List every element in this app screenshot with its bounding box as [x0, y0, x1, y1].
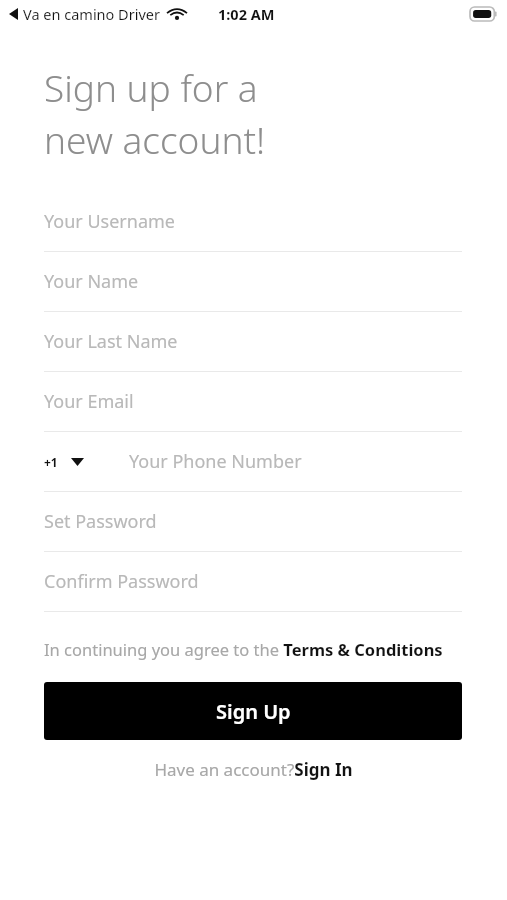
staticText: +1	[44, 454, 58, 470]
staticText: Sign up for a new account!	[44, 62, 266, 165]
other: Select country code	[68, 453, 86, 471]
staticText: Your Email	[44, 389, 134, 414]
staticText: Your Phone Number	[129, 449, 302, 474]
staticText: Confirm Password	[44, 569, 199, 594]
staticText: Your Last Name	[44, 329, 178, 354]
staticText: Your Username	[44, 209, 175, 234]
button[interactable]: Confirm Password	[44, 552, 462, 612]
button[interactable]: Your Username	[44, 192, 462, 252]
staticText: In continuing you agree to the Terms & C…	[44, 638, 443, 660]
button[interactable]: Have an account?Sign In	[44, 758, 462, 781]
staticText: Your Name	[44, 269, 139, 294]
button[interactable]: Set Password	[44, 492, 462, 552]
staticText: Have an account?Sign In	[154, 758, 353, 781]
button[interactable]: Your Name	[44, 252, 462, 312]
button[interactable]: +1	[44, 432, 462, 492]
staticText: Va en camino Driver	[23, 4, 160, 24]
staticText: Sign Up	[216, 698, 291, 725]
button[interactable]: Sign Up	[44, 682, 462, 740]
staticText: 1:02 AM	[218, 4, 275, 24]
button[interactable]: In continuing you agree to the Terms & C…	[44, 638, 462, 660]
button[interactable]: Your Last Name	[44, 312, 462, 372]
staticText: Set Password	[44, 509, 157, 534]
button[interactable]: Your Email	[44, 372, 462, 432]
